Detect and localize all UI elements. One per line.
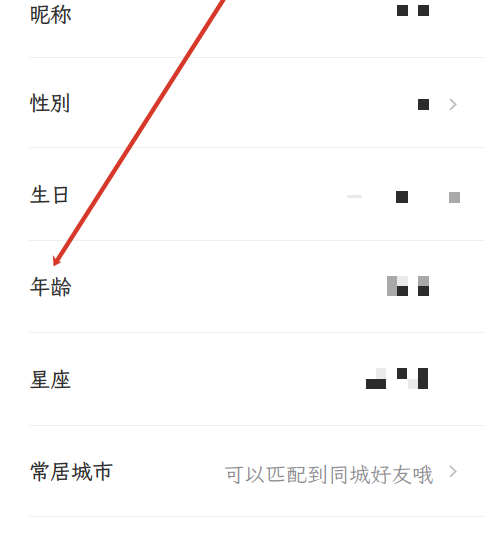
button[interactable]: 年龄 bbox=[0, 241, 484, 332]
button[interactable]: 常居城市 bbox=[0, 426, 484, 516]
staticText: 昵称 bbox=[29, 0, 71, 28]
staticText: 生日 bbox=[29, 180, 71, 208]
staticText: 星座 bbox=[29, 365, 71, 393]
staticText: 性别 bbox=[29, 88, 71, 117]
staticText: 可以匹配到同城好友哦 bbox=[223, 460, 433, 488]
button[interactable]: 生日 bbox=[0, 148, 484, 240]
button[interactable]: 昵称 bbox=[0, 0, 484, 57]
staticText: 常居城市 bbox=[29, 457, 113, 485]
button[interactable]: 性别 bbox=[0, 58, 484, 147]
staticText: 年龄 bbox=[29, 272, 71, 301]
button[interactable]: 星座 bbox=[0, 333, 484, 425]
